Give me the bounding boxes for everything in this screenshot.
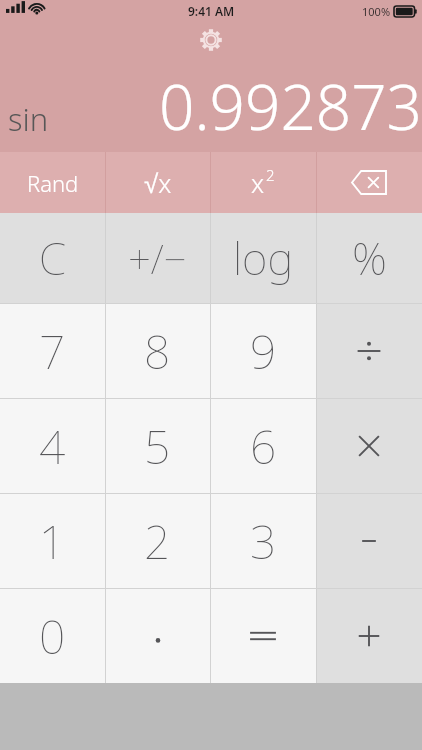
staticText: x — [251, 165, 265, 200]
staticText: 9:41 AM — [188, 3, 235, 19]
button[interactable]: x — [210, 152, 316, 213]
staticText: 2 — [144, 510, 171, 573]
button[interactable]: 8 — [105, 304, 210, 398]
button[interactable]: 0 — [0, 589, 105, 683]
button[interactable]: Settings — [196, 25, 226, 55]
staticText: 7 — [39, 320, 66, 383]
staticText: 8 — [144, 320, 171, 383]
staticText: 4 — [39, 415, 66, 478]
button[interactable]: 5 — [105, 399, 210, 493]
staticText: sin — [8, 98, 49, 140]
staticText: 0.992873 — [159, 64, 422, 148]
button[interactable]: C — [0, 213, 105, 303]
staticText: 100% — [362, 4, 391, 19]
button[interactable]: Multiply — [316, 399, 422, 493]
staticText: 0 — [39, 605, 66, 668]
button[interactable]: log — [210, 213, 316, 303]
button[interactable] — [210, 589, 316, 683]
staticText: C — [39, 228, 67, 288]
button[interactable]: √x — [105, 152, 210, 213]
staticText: % — [352, 228, 387, 288]
button[interactable]: Backspace — [316, 152, 422, 213]
button[interactable]: +/− — [105, 213, 210, 303]
staticText: +/− — [128, 231, 187, 285]
button[interactable]: 2 — [105, 494, 210, 588]
staticText: 9 — [250, 320, 277, 383]
staticText: √x — [144, 165, 172, 200]
button[interactable]: Plus — [316, 589, 422, 683]
button[interactable] — [105, 589, 210, 683]
button[interactable]: 6 — [210, 399, 316, 493]
staticText: 2 — [266, 165, 275, 185]
staticText: 6 — [250, 415, 277, 478]
staticText: Rand — [27, 168, 79, 198]
button[interactable]: 1 — [0, 494, 105, 588]
staticText: 5 — [144, 415, 171, 478]
button[interactable]: Minus — [316, 494, 422, 588]
button[interactable]: Rand — [0, 152, 105, 213]
staticText: log — [233, 228, 294, 288]
button[interactable]: 4 — [0, 399, 105, 493]
staticText: 1 — [39, 510, 66, 573]
button[interactable]: 3 — [210, 494, 316, 588]
staticText: 3 — [250, 510, 277, 573]
button[interactable]: % — [316, 213, 422, 303]
button[interactable]: 9 — [210, 304, 316, 398]
button[interactable]: Divide — [316, 304, 422, 398]
button[interactable]: 7 — [0, 304, 105, 398]
